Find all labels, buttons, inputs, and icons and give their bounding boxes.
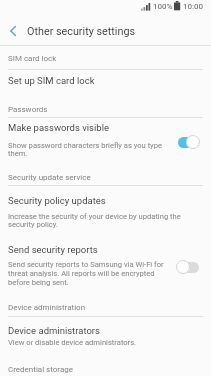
staticText: Set up SIM card lock [8,75,95,86]
staticText: Device administrators [8,325,100,336]
staticText: Make passwords visible [8,122,109,133]
staticText: 100% [153,2,173,11]
staticText: security policy. [8,220,58,229]
staticText: Other security settings [27,25,136,38]
staticText: threat analysis. All reports will be enc… [8,269,155,278]
staticText: View or disable device administrators. [8,338,137,347]
button[interactable] [0,70,211,98]
staticText: Passwords [8,105,48,114]
button[interactable] [0,236,211,293]
staticText: Device administration [8,303,86,312]
staticText: Send security reports [8,244,98,255]
button[interactable] [0,14,26,45]
button[interactable] [0,118,211,161]
staticText: Security update service [8,173,91,182]
staticText: them. [8,149,28,158]
staticText: Send security reports to Samsung via Wi-… [8,260,164,269]
staticText: SIM card lock [8,54,57,63]
staticText: before being sent. [8,278,69,287]
button[interactable] [0,186,211,233]
staticText: 10:00 [183,2,203,11]
button[interactable] [178,262,199,273]
staticText: Show password characters briefly as you … [8,141,162,150]
staticText: Credential storage [8,365,73,374]
button[interactable] [0,317,211,353]
staticText: Increase the security of your device by … [8,212,181,221]
staticText: Security policy updates [8,195,106,206]
button[interactable] [178,137,199,148]
